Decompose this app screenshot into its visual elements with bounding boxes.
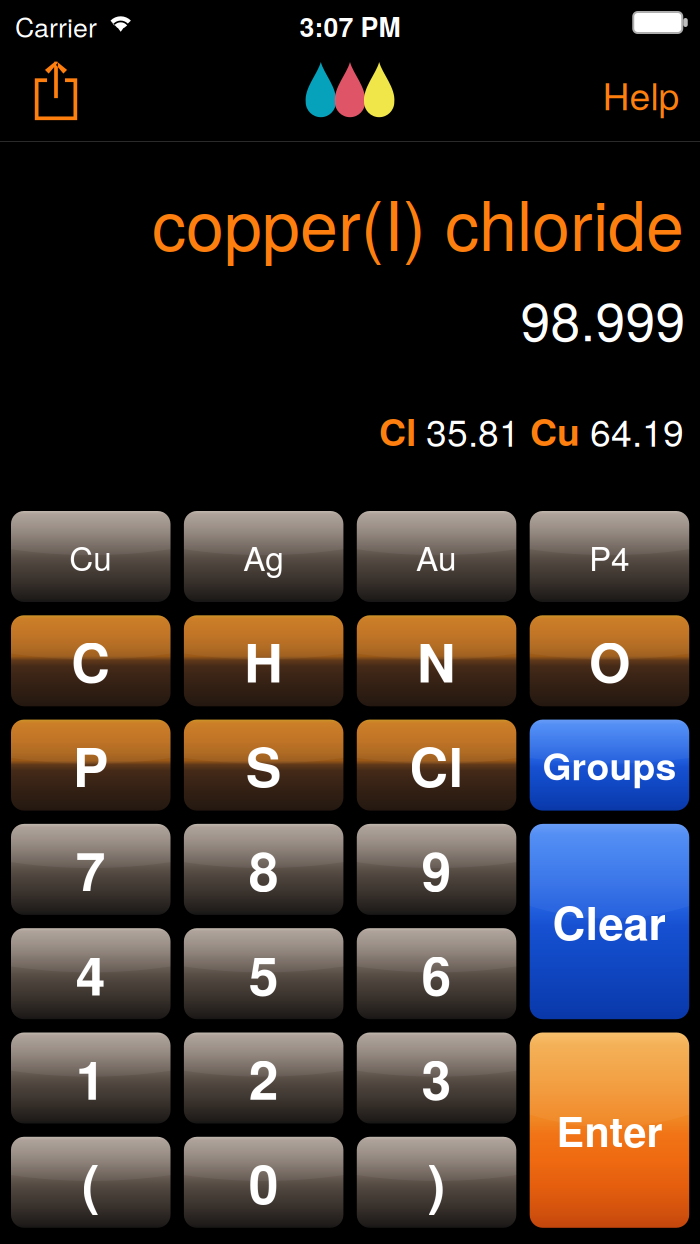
staticText: 3:07 PM (299, 7, 400, 45)
button[interactable]: Ag (184, 511, 343, 602)
button[interactable]: Groups (530, 720, 689, 811)
button[interactable]: Help (549, 49, 679, 139)
staticText: 98.999 (520, 280, 685, 356)
button[interactable]: P4 (530, 511, 689, 602)
staticText: 4 (76, 935, 106, 1012)
staticText: H (244, 623, 283, 699)
button[interactable]: 3 (357, 1032, 516, 1123)
staticText: O (589, 623, 630, 699)
button[interactable]: 2 (184, 1032, 343, 1123)
button[interactable]: O (530, 615, 689, 706)
button[interactable]: ( (11, 1137, 170, 1228)
staticText: Cl (379, 404, 426, 457)
staticText: ( (82, 1144, 100, 1220)
staticText: ) (428, 1144, 446, 1220)
button[interactable]: 8 (184, 824, 343, 915)
staticText: Cu (69, 533, 112, 580)
button[interactable]: Clear (530, 824, 689, 1019)
button[interactable]: N (357, 615, 516, 706)
staticText: Groups (542, 738, 676, 792)
button[interactable]: Cl (357, 720, 516, 811)
staticText: Au (416, 533, 457, 580)
staticText: Cu (530, 404, 590, 457)
staticText: 7 (76, 831, 106, 908)
staticText: 64.19 (590, 404, 684, 457)
button[interactable]: Cu (11, 511, 170, 602)
staticText: P (73, 727, 109, 803)
button[interactable]: 7 (11, 824, 170, 915)
button[interactable]: 6 (357, 928, 516, 1019)
staticText: Carrier (15, 7, 97, 45)
button[interactable]: ) (357, 1137, 516, 1228)
staticText: P4 (589, 533, 630, 580)
button[interactable]: 0 (184, 1137, 343, 1228)
staticText: S (246, 727, 282, 803)
button[interactable]: 5 (184, 928, 343, 1019)
button[interactable]: C (11, 615, 170, 706)
button[interactable]: H (184, 615, 343, 706)
staticText: 9 (422, 831, 452, 908)
staticText: 35.81 (426, 404, 530, 457)
button[interactable]: 9 (357, 824, 516, 915)
staticText: 8 (249, 831, 279, 908)
staticText: 1 (76, 1040, 106, 1116)
staticText: 2 (249, 1040, 279, 1116)
button[interactable]: 1 (11, 1032, 170, 1123)
button[interactable]: 4 (11, 928, 170, 1019)
staticText: C (71, 623, 110, 699)
button[interactable]: Au (357, 511, 516, 602)
staticText: 0 (249, 1144, 279, 1220)
button[interactable]: Enter (530, 1032, 689, 1228)
staticText: Cl (410, 727, 464, 803)
staticText: Ag (243, 533, 284, 580)
button[interactable]: Share (19, 45, 93, 135)
staticText: copper(I) chloride (152, 173, 684, 270)
staticText: N (417, 623, 456, 699)
button[interactable]: P (11, 720, 170, 811)
staticText: 5 (249, 935, 279, 1012)
staticText: Help (602, 67, 679, 121)
staticText: Enter (556, 1101, 662, 1160)
staticText: 3 (422, 1040, 452, 1116)
staticText: 6 (422, 935, 452, 1012)
button[interactable]: S (184, 720, 343, 811)
staticText: Clear (552, 889, 666, 954)
